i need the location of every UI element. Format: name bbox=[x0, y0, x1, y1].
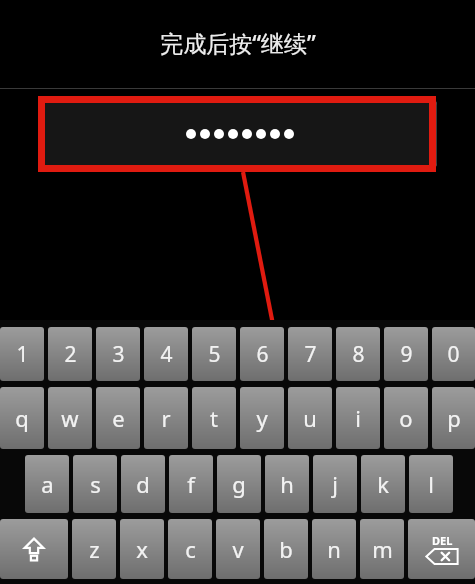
staticText: 完成后按“继续” bbox=[160, 27, 316, 58]
staticText: j bbox=[332, 469, 338, 499]
button[interactable]: l bbox=[409, 455, 453, 513]
staticText: i bbox=[355, 403, 361, 433]
button[interactable]: 1 bbox=[0, 327, 44, 381]
button[interactable]: x bbox=[120, 519, 164, 579]
button[interactable]: q bbox=[0, 387, 44, 449]
staticText: 4 bbox=[160, 340, 173, 369]
button[interactable]: n bbox=[312, 519, 356, 579]
staticText: g bbox=[232, 469, 246, 499]
button[interactable]: h bbox=[265, 455, 309, 513]
staticText: q bbox=[15, 403, 29, 433]
staticText: a bbox=[41, 469, 54, 499]
button[interactable]: r bbox=[144, 387, 188, 449]
button[interactable]: k bbox=[361, 455, 405, 513]
staticText: e bbox=[112, 403, 125, 433]
button[interactable] bbox=[42, 100, 437, 168]
staticText: t bbox=[210, 403, 218, 433]
button[interactable]: Delete bbox=[408, 519, 475, 579]
button[interactable]: 9 bbox=[384, 327, 428, 381]
staticText: h bbox=[280, 469, 294, 499]
staticText: 2 bbox=[64, 340, 77, 369]
button[interactable]: z bbox=[72, 519, 116, 579]
button[interactable]: i bbox=[336, 387, 380, 449]
button[interactable]: 5 bbox=[192, 327, 236, 381]
staticText: 8 bbox=[352, 340, 365, 369]
button[interactable]: o bbox=[384, 387, 428, 449]
button[interactable]: 8 bbox=[336, 327, 380, 381]
button[interactable]: b bbox=[264, 519, 308, 579]
button[interactable]: u bbox=[288, 387, 332, 449]
button[interactable]: e bbox=[96, 387, 140, 449]
staticText: 5 bbox=[208, 340, 221, 369]
button[interactable]: 6 bbox=[240, 327, 284, 381]
button[interactable]: m bbox=[360, 519, 404, 579]
button[interactable]: w bbox=[48, 387, 92, 449]
button[interactable]: d bbox=[121, 455, 165, 513]
staticText: p bbox=[447, 403, 461, 433]
staticText: k bbox=[377, 469, 389, 499]
staticText: r bbox=[161, 403, 171, 433]
staticText: 6 bbox=[256, 340, 269, 369]
staticText: f bbox=[187, 469, 195, 499]
staticText: l bbox=[428, 469, 434, 499]
staticText: n bbox=[327, 534, 341, 564]
staticText: x bbox=[136, 534, 148, 564]
staticText: v bbox=[232, 534, 244, 564]
button[interactable]: f bbox=[169, 455, 213, 513]
staticText: w bbox=[61, 403, 79, 433]
staticText: 0 bbox=[447, 340, 460, 369]
button[interactable]: 3 bbox=[96, 327, 140, 381]
button[interactable]: 4 bbox=[144, 327, 188, 381]
button[interactable]: v bbox=[216, 519, 260, 579]
staticText: 7 bbox=[304, 340, 317, 369]
staticText: o bbox=[399, 403, 413, 433]
staticText: DEL bbox=[432, 533, 453, 548]
button[interactable]: Shift bbox=[0, 519, 68, 579]
button[interactable]: 0 bbox=[432, 327, 475, 381]
staticText: c bbox=[185, 534, 196, 564]
button[interactable]: j bbox=[313, 455, 357, 513]
staticText: d bbox=[136, 469, 150, 499]
staticText: 1 bbox=[16, 340, 29, 369]
staticText: 3 bbox=[112, 340, 125, 369]
button[interactable]: 2 bbox=[48, 327, 92, 381]
button[interactable]: s bbox=[73, 455, 117, 513]
staticText: b bbox=[279, 534, 293, 564]
button[interactable]: g bbox=[217, 455, 261, 513]
button[interactable]: t bbox=[192, 387, 236, 449]
staticText: 9 bbox=[400, 340, 413, 369]
button[interactable]: a bbox=[25, 455, 69, 513]
staticText: z bbox=[89, 534, 100, 564]
button[interactable]: p bbox=[432, 387, 475, 449]
staticText: y bbox=[256, 403, 268, 433]
button[interactable]: c bbox=[168, 519, 212, 579]
button[interactable]: 7 bbox=[288, 327, 332, 381]
staticText: u bbox=[303, 403, 317, 433]
button[interactable]: y bbox=[240, 387, 284, 449]
staticText: s bbox=[90, 469, 101, 499]
staticText: m bbox=[372, 534, 393, 564]
